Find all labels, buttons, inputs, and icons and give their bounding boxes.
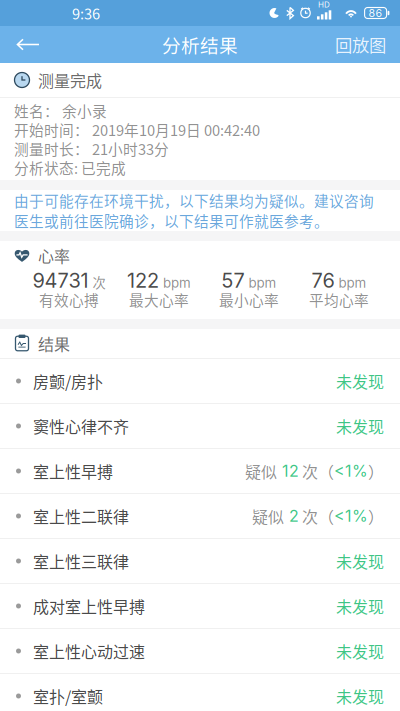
- staticText: HD: [318, 0, 330, 9]
- button[interactable]: Back: [0, 26, 56, 63]
- staticText: 2: [289, 506, 299, 526]
- staticText: 分析状态: 已完成: [14, 157, 126, 178]
- staticText: 有效心搏: [39, 289, 99, 310]
- staticText: 未发现: [336, 639, 384, 663]
- staticText: 次（: [302, 459, 334, 483]
- button[interactable]: 室上性二联律: [0, 494, 400, 539]
- staticText: <1%: [334, 461, 368, 481]
- button[interactable]: 回放图: [321, 26, 400, 63]
- staticText: 回放图: [335, 32, 386, 57]
- button[interactable]: 窦性心律不齐: [0, 404, 400, 449]
- staticText: 房颤/房扑: [33, 369, 103, 393]
- button[interactable]: 室上性三联律: [0, 539, 400, 584]
- button[interactable]: 室上性早搏: [0, 449, 400, 494]
- staticText: 由于可能存在环境干扰，以下结果均为疑似。建议咨询医生或前往医院确诊，以下结果可作…: [14, 190, 374, 231]
- staticText: 次: [92, 272, 105, 292]
- staticText: 未发现: [336, 594, 384, 618]
- staticText: bpm: [338, 275, 366, 291]
- staticText: 姓名： 余小录: [14, 100, 107, 121]
- staticText: 未发现: [336, 369, 384, 393]
- staticText: 未发现: [336, 549, 384, 573]
- staticText: 分析结果: [162, 31, 238, 58]
- staticText: 室扑/室颤: [33, 684, 103, 708]
- button[interactable]: 室上性心动过速: [0, 629, 400, 674]
- staticText: 最小心率: [219, 289, 279, 310]
- staticText: 结果: [38, 332, 70, 355]
- button[interactable]: 房颤/房扑: [0, 359, 400, 404]
- staticText: ）: [368, 504, 384, 528]
- staticText: 平均心率: [309, 289, 369, 310]
- staticText: 57: [221, 268, 244, 293]
- staticText: 疑似: [252, 504, 284, 528]
- staticText: 未发现: [336, 684, 384, 708]
- staticText: ）: [368, 459, 384, 483]
- staticText: 心率: [38, 244, 70, 267]
- staticText: 窦性心律不齐: [33, 414, 129, 438]
- staticText: 室上性三联律: [33, 549, 129, 573]
- staticText: 次（: [302, 504, 334, 528]
- staticText: 测量完成: [38, 68, 102, 92]
- staticText: 最大心率: [129, 289, 189, 310]
- staticText: 86: [369, 6, 383, 19]
- staticText: 12: [282, 461, 299, 481]
- staticText: 94731: [32, 268, 88, 293]
- staticText: 开始时间： 2019年10月19日 00:42:40: [14, 119, 260, 140]
- staticText: 测量时长： 21小时33分: [14, 138, 169, 159]
- staticText: 成对室上性早搏: [33, 594, 145, 618]
- staticText: 疑似: [245, 459, 277, 483]
- staticText: 未发现: [336, 414, 384, 438]
- staticText: 76: [311, 268, 334, 293]
- staticText: <1%: [334, 506, 368, 526]
- staticText: 室上性心动过速: [33, 639, 145, 663]
- button[interactable]: 成对室上性早搏: [0, 584, 400, 629]
- staticText: bpm: [248, 275, 276, 291]
- staticText: 室上性早搏: [33, 459, 113, 483]
- button[interactable]: 室扑/室颤: [0, 674, 400, 711]
- staticText: 122: [127, 268, 159, 293]
- staticText: bpm: [163, 275, 191, 291]
- staticText: 9:36: [72, 2, 100, 24]
- staticText: 室上性二联律: [33, 504, 129, 528]
